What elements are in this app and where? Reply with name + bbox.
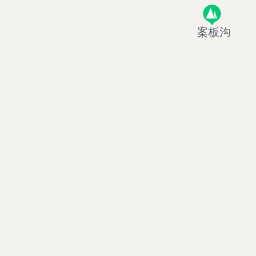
staticText: 案板沟 bbox=[197, 25, 231, 39]
staticText: 案板沟 bbox=[198, 25, 232, 39]
staticText: 案板沟 bbox=[197, 26, 231, 40]
staticText: 案板沟 bbox=[197, 25, 231, 39]
staticText: 案板沟 bbox=[197, 25, 231, 39]
button[interactable]: 案板沟 scenic spot marker bbox=[196, 3, 232, 39]
